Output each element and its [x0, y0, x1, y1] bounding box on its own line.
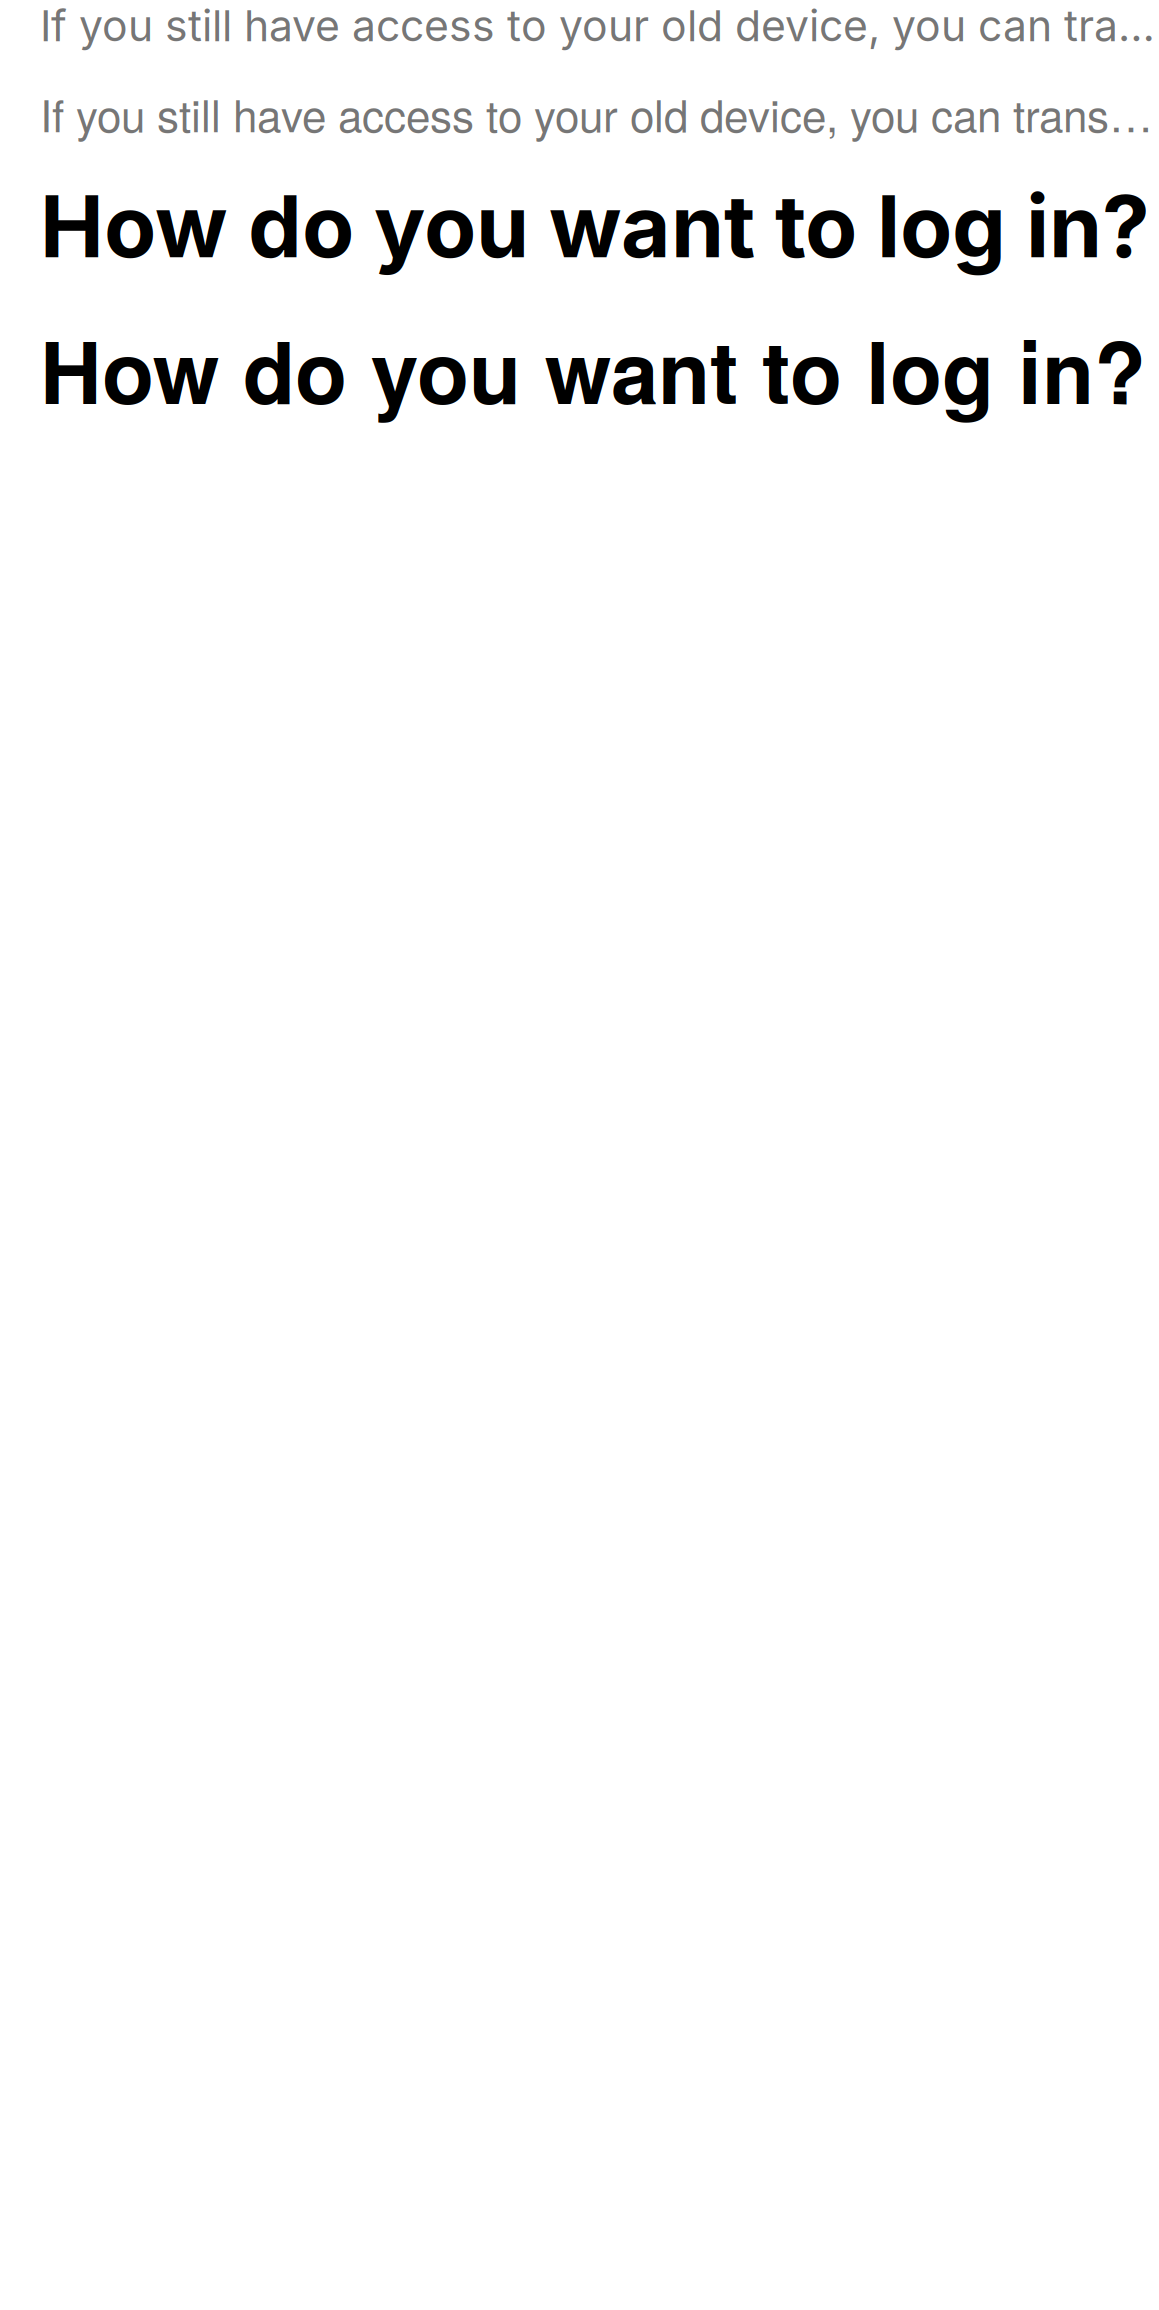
- staticText: If you still have access to your old dev…: [40, 0, 1159, 52]
- staticText: If you still have access to your old dev…: [40, 82, 1159, 145]
- staticText: How do you want to log in?: [40, 308, 1146, 430]
- staticText: How do you want to log in?: [40, 175, 1150, 278]
